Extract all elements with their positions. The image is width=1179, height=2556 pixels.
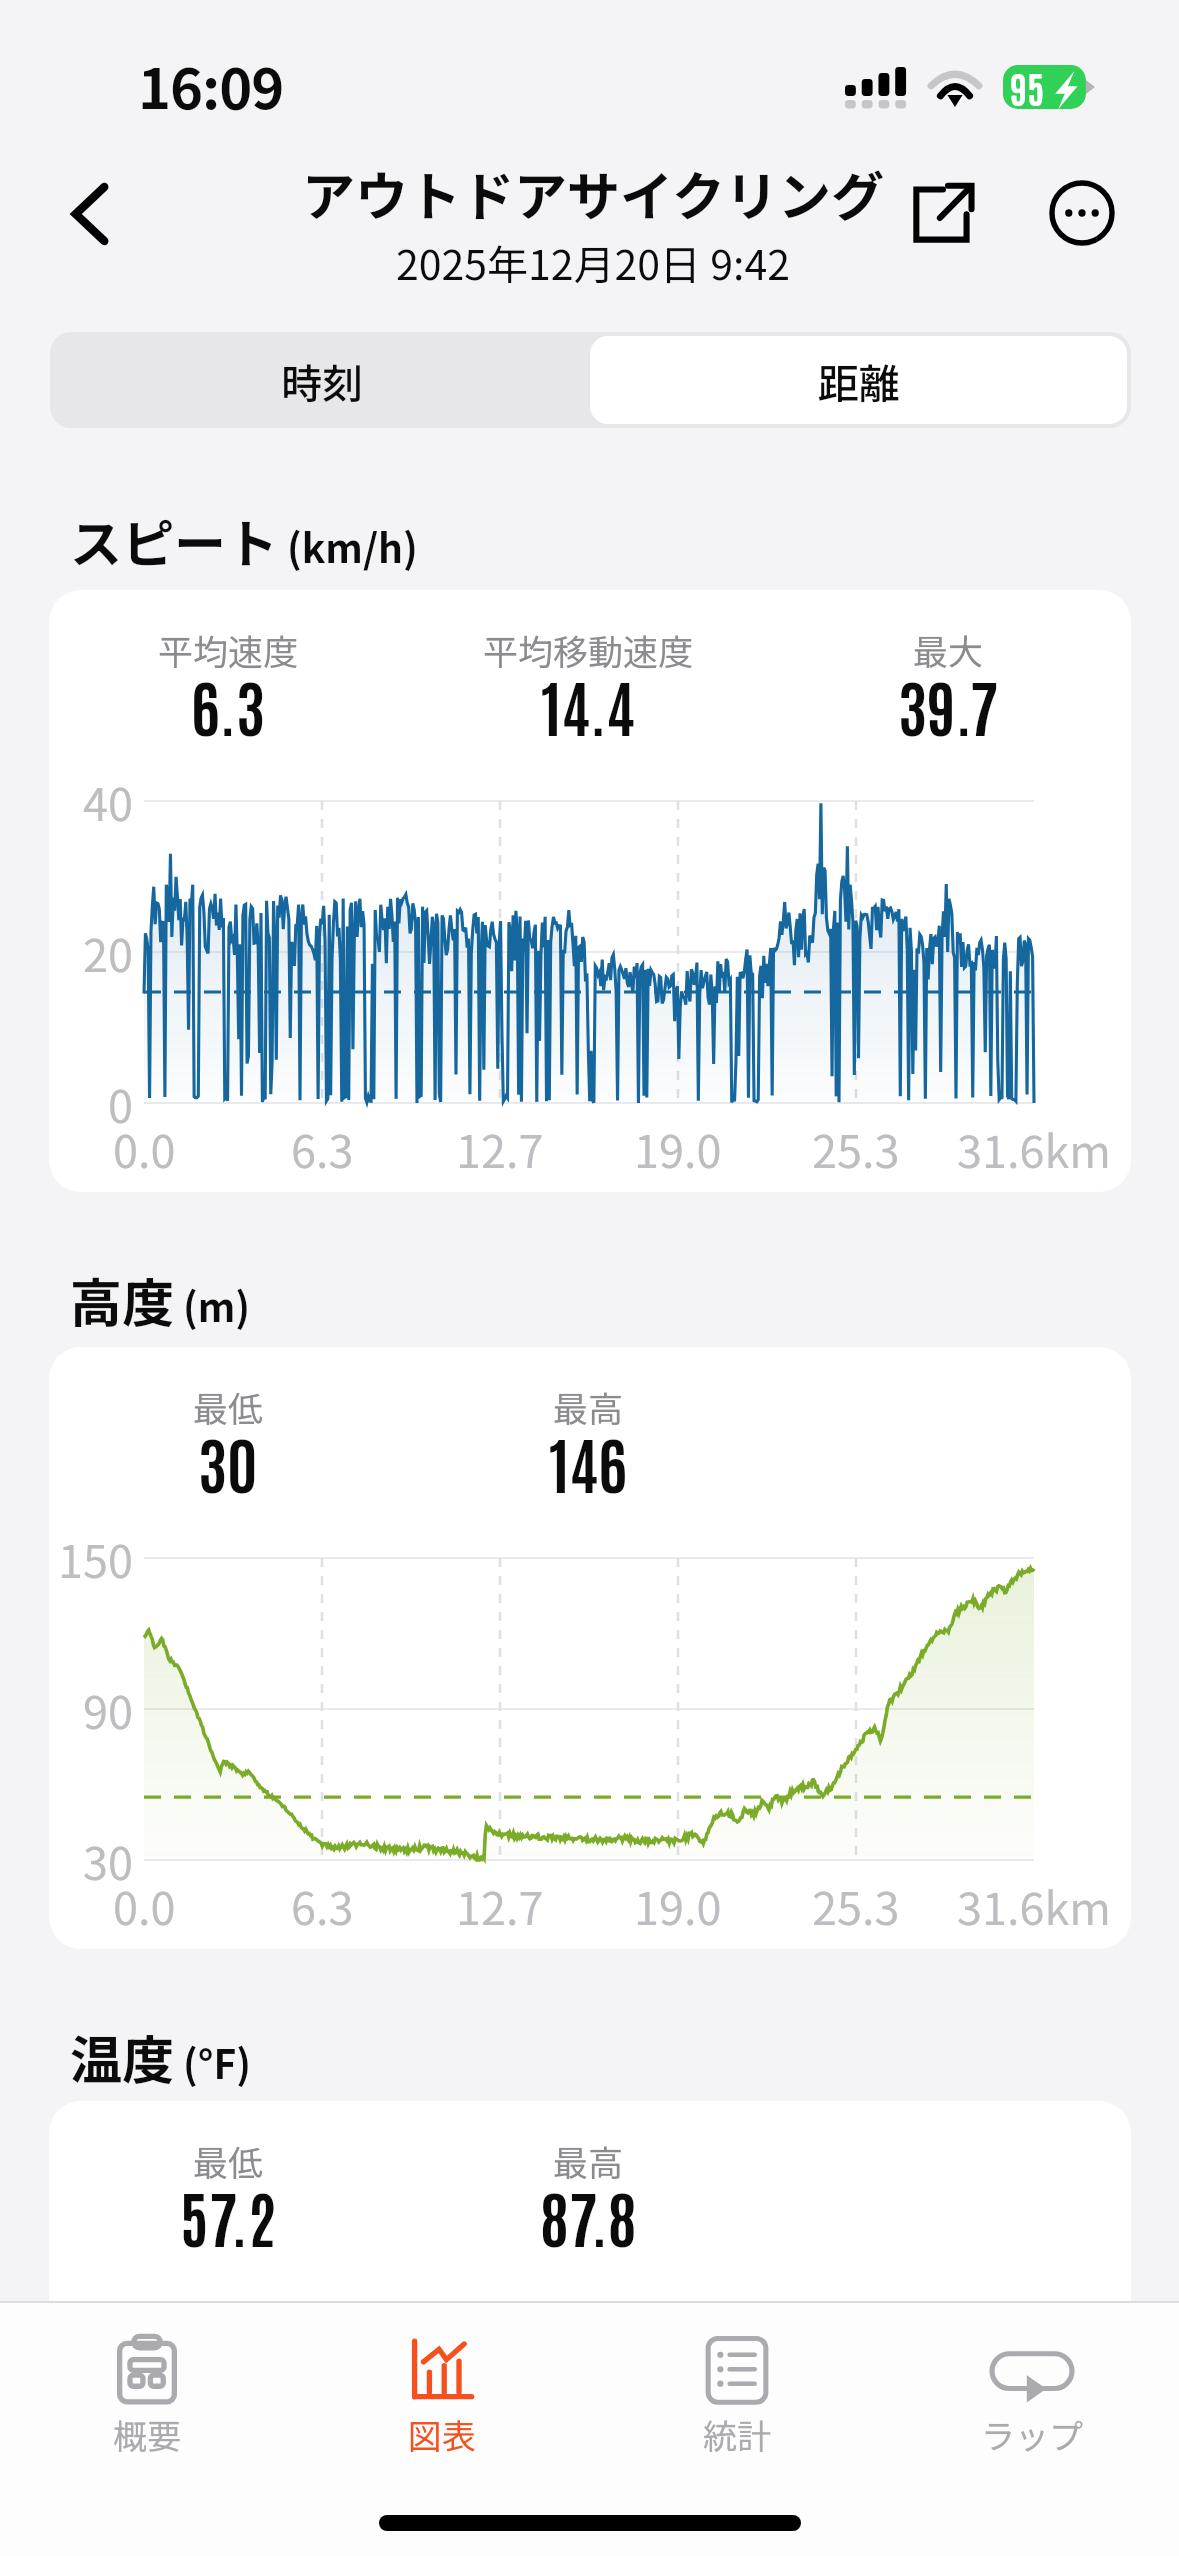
staticText: 0.0 <box>113 1873 176 1938</box>
staticText: 概要 <box>113 2410 181 2459</box>
button[interactable]: 図表 <box>294 2333 589 2493</box>
staticText: 高度 <box>70 1262 175 1337</box>
staticText: 最高 <box>553 2135 624 2186</box>
staticText: 最低 <box>193 1381 264 1432</box>
staticText: ラップ <box>981 2410 1083 2459</box>
staticText: 最大 <box>913 624 984 675</box>
staticText: 31.6km <box>957 1116 1111 1181</box>
staticText: 最高 <box>553 1381 624 1432</box>
staticText: 30 <box>198 1421 258 1501</box>
staticText: 57.2 <box>180 2175 277 2255</box>
button[interactable]: 概要 <box>0 2333 294 2493</box>
button[interactable]: 統計 <box>589 2333 884 2493</box>
button[interactable]: 時刻 <box>54 336 590 424</box>
staticText: 30 <box>83 1828 133 1893</box>
staticText: 統計 <box>703 2410 771 2459</box>
button[interactable]: 距離 <box>590 336 1127 424</box>
staticText: 平均移動速度 <box>483 624 694 675</box>
staticText: (°F) <box>183 2034 252 2090</box>
staticText: 87.8 <box>540 2175 637 2255</box>
staticText: 90 <box>83 1677 133 1742</box>
staticText: 12.7 <box>456 1116 544 1181</box>
staticText: 40 <box>83 769 133 834</box>
staticText: 6.3 <box>291 1873 354 1938</box>
staticText: 時刻 <box>281 351 363 410</box>
staticText: 95 <box>1010 63 1045 107</box>
staticText: 20 <box>83 920 133 985</box>
staticText: 19.0 <box>634 1116 722 1181</box>
staticText: 12.7 <box>456 1873 544 1938</box>
staticText: 0 <box>108 1071 133 1136</box>
staticText: (km/h) <box>287 518 418 574</box>
staticText: 146 <box>549 1421 628 1501</box>
staticText: 25.3 <box>812 1116 900 1181</box>
staticText: 39.7 <box>898 664 999 744</box>
staticText: スピート <box>70 503 279 578</box>
staticText: 14.4 <box>541 664 636 744</box>
staticText: 0.0 <box>113 1116 176 1181</box>
staticText: 平均速度 <box>158 624 299 675</box>
button[interactable]: Share <box>893 163 993 263</box>
staticText: 19.0 <box>634 1873 722 1938</box>
staticText: アウトドアサイクリング <box>302 155 884 232</box>
staticText: 25.3 <box>812 1873 900 1938</box>
staticText: 150 <box>58 1526 133 1591</box>
staticText: 16:09 <box>138 44 284 125</box>
staticText: 2025年12月20日 9:42 <box>396 232 790 291</box>
staticText: 31.6km <box>957 1873 1111 1938</box>
staticText: 温度 <box>70 2019 175 2094</box>
button[interactable]: More options <box>1032 163 1132 263</box>
button[interactable]: ラップ <box>884 2333 1179 2493</box>
staticText: 距離 <box>818 351 900 410</box>
staticText: 最低 <box>193 2135 264 2186</box>
staticText: (m) <box>183 1277 251 1333</box>
staticText: 図表 <box>408 2410 476 2459</box>
button[interactable]: Back <box>30 152 150 276</box>
staticText: 6.3 <box>291 1116 354 1181</box>
staticText: 6.3 <box>191 664 265 744</box>
